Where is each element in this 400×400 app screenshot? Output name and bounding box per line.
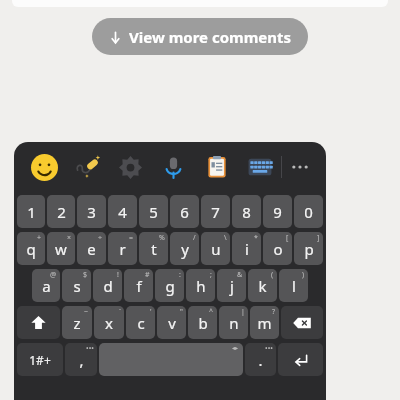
staticText: r [119, 239, 126, 259]
staticText: ^ [209, 307, 214, 317]
staticText: p [304, 239, 314, 259]
button[interactable]: t [139, 232, 168, 265]
staticText: m [257, 313, 272, 333]
button[interactable]: l [279, 269, 308, 302]
staticText: 0 [304, 202, 313, 222]
button[interactable]: Shift [17, 306, 60, 339]
button[interactable]: b [188, 306, 217, 339]
staticText: | [241, 307, 245, 317]
button[interactable]: k [248, 269, 277, 302]
button[interactable]: More options [282, 149, 318, 185]
button[interactable]: d [93, 269, 122, 302]
button[interactable]: c [126, 306, 155, 339]
staticText: v [168, 313, 176, 333]
staticText: 7 [211, 202, 220, 222]
button[interactable]: , [65, 343, 97, 376]
staticText: h [196, 276, 206, 296]
staticText: o [273, 239, 283, 259]
button[interactable]: x [94, 306, 124, 339]
staticText: ` [119, 307, 121, 317]
button[interactable]: v [157, 306, 186, 339]
staticText: # [145, 270, 150, 280]
staticText: d [103, 276, 113, 296]
staticText: ••• [86, 344, 94, 354]
staticText: @ [50, 270, 57, 280]
button[interactable]: f [124, 269, 153, 302]
staticText: 8 [242, 202, 251, 222]
staticText: ? [272, 307, 276, 317]
button[interactable]: View more comments [92, 18, 308, 55]
staticText: & [237, 270, 243, 280]
staticText: ◂▸ [232, 344, 239, 351]
staticText: q [26, 239, 36, 259]
staticText: s [73, 276, 81, 296]
button[interactable]: 7 [201, 195, 230, 228]
button[interactable]: Voice input [152, 147, 195, 187]
staticText: g [165, 276, 175, 296]
button[interactable]: p [294, 232, 323, 265]
staticText: $ [83, 270, 88, 280]
button[interactable]: h [186, 269, 215, 302]
staticText: ! [117, 270, 119, 280]
staticText: ( [271, 270, 274, 280]
staticText: u [211, 239, 221, 259]
button[interactable]: 1 [17, 195, 45, 228]
button[interactable]: Clipboard [195, 147, 238, 187]
button[interactable]: e [77, 232, 106, 265]
staticText: ÷ [98, 233, 103, 243]
button[interactable]: 3 [77, 195, 106, 228]
button[interactable]: Stickers [66, 147, 109, 187]
button[interactable]: j [217, 269, 246, 302]
button[interactable]: g [155, 269, 184, 302]
staticText: y [181, 239, 189, 259]
button[interactable]: m [250, 306, 279, 339]
button[interactable]: Switch keyboard [238, 147, 281, 187]
staticText: 5 [149, 202, 158, 222]
staticText: ; [210, 270, 212, 280]
button[interactable]: 0 [294, 195, 323, 228]
button[interactable]: n [219, 306, 248, 339]
button[interactable]: i [232, 232, 261, 265]
button[interactable]: . [245, 343, 276, 376]
button[interactable]: Enter [278, 343, 323, 376]
button[interactable]: q [17, 232, 45, 265]
button[interactable]: w [47, 232, 75, 265]
button[interactable]: 5 [139, 195, 168, 228]
button[interactable]: Emoji [22, 147, 66, 187]
staticText: 3 [87, 202, 96, 222]
button[interactable]: r [108, 232, 137, 265]
staticText: k [258, 276, 267, 296]
staticText: . [258, 350, 263, 370]
staticText: 1 [27, 202, 36, 222]
button[interactable]: 1#+ [17, 343, 63, 376]
button[interactable]: 6 [170, 195, 199, 228]
staticText: 2 [57, 202, 66, 222]
button[interactable]: 8 [232, 195, 261, 228]
button[interactable]: u [201, 232, 230, 265]
staticText: t [151, 239, 157, 259]
staticText: l [292, 276, 296, 296]
button[interactable]: s [62, 269, 91, 302]
staticText: w [55, 239, 67, 259]
button[interactable]: y [170, 232, 199, 265]
button[interactable]: Space [99, 343, 243, 376]
staticText: , [79, 350, 84, 370]
button[interactable]: o [263, 232, 292, 265]
button[interactable]: 9 [263, 195, 292, 228]
staticText: 1#+ [29, 352, 51, 368]
button[interactable]: 2 [47, 195, 75, 228]
staticText: [ [286, 233, 289, 243]
staticText: z [73, 313, 81, 333]
button[interactable]: Settings [109, 147, 152, 187]
staticText: j [230, 276, 234, 296]
staticText: x [105, 313, 113, 333]
staticText: b [198, 313, 208, 333]
button[interactable]: a [32, 269, 60, 302]
button[interactable]: Backspace [281, 306, 323, 339]
staticText: ) [302, 270, 305, 280]
button[interactable]: 4 [108, 195, 137, 228]
staticText: ••• [265, 344, 273, 354]
staticText: × [67, 233, 72, 243]
staticText: e [87, 239, 96, 259]
button[interactable]: z [62, 306, 92, 339]
